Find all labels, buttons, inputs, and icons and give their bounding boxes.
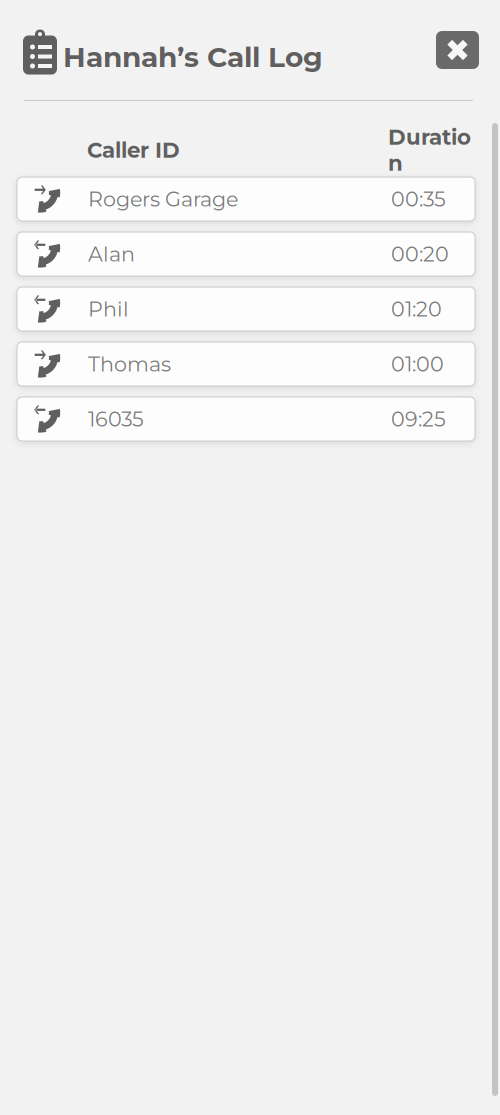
staticText: n — [388, 150, 403, 176]
staticText: Duratio — [388, 124, 471, 150]
button[interactable]: Phil — [17, 287, 475, 331]
staticText: Caller ID — [87, 137, 180, 163]
staticText: 01:00 — [391, 351, 444, 377]
staticText: 01:20 — [391, 296, 442, 322]
staticText: Alan — [88, 241, 135, 267]
staticText: Phil — [88, 296, 129, 322]
staticText: Hannah’s Call Log — [63, 40, 323, 74]
button[interactable]: Alan — [17, 232, 475, 276]
button[interactable]: Close — [436, 31, 479, 69]
button[interactable]: 16035 — [17, 397, 475, 441]
staticText: Rogers Garage — [88, 186, 238, 212]
staticText: 00:20 — [391, 241, 449, 267]
button[interactable]: Thomas — [17, 342, 475, 386]
staticText: 09:25 — [391, 406, 446, 432]
staticText: 16035 — [88, 406, 144, 432]
staticText: 00:35 — [391, 186, 446, 212]
button[interactable]: Rogers Garage — [17, 177, 475, 221]
staticText: Thomas — [88, 351, 171, 377]
